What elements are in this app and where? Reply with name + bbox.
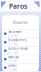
- button[interactable]: Santa Maria: [2, 29, 39, 38]
- staticText: Kolymbithres: [8, 38, 26, 42]
- button[interactable]: Naoussa: [2, 55, 39, 63]
- staticText: Paros: [9, 2, 27, 11]
- staticText: 2.4 km: [8, 34, 17, 37]
- button[interactable]: Lefkes: [2, 63, 39, 72]
- staticText: Naoussa: [8, 55, 18, 59]
- staticText: Golden Beach: [8, 47, 28, 50]
- staticText: Lefkes: [8, 64, 16, 67]
- staticText: Beaches: [13, 20, 28, 25]
- button[interactable]: More: [33, 0, 41, 12]
- button[interactable]: Golden Beach: [2, 46, 39, 55]
- button[interactable]: Back: [0, 0, 9, 12]
- staticText: 14 km: [8, 68, 16, 71]
- staticText: 8.7 km: [8, 51, 17, 54]
- button[interactable]: Kolymbithres: [2, 38, 39, 46]
- staticText: 11 km: [8, 59, 16, 63]
- staticText: Santa Maria: [8, 30, 21, 33]
- staticText: 5.1 km: [8, 42, 17, 46]
